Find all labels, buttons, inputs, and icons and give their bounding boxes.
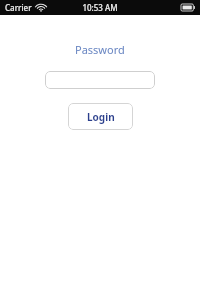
button[interactable]: Password input field [45,71,155,89]
staticText: Password [75,42,125,57]
button[interactable]: Login [68,103,133,130]
staticText: Carrier [5,2,32,13]
staticText: 10:53 AM [82,2,118,13]
staticText: Login [87,110,115,124]
